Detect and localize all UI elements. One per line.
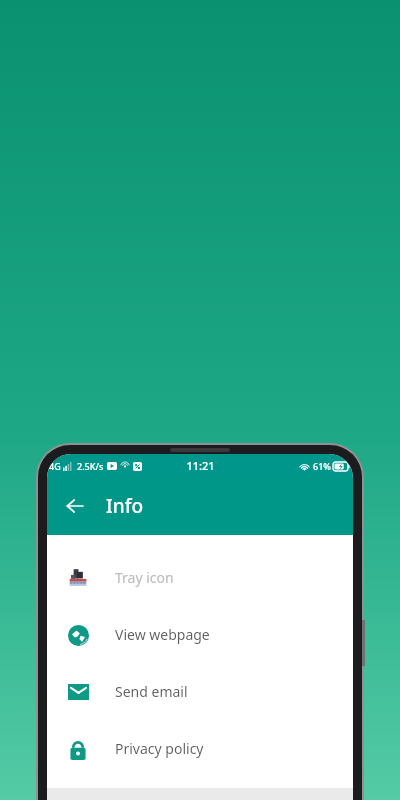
staticText: Send email bbox=[115, 682, 188, 701]
button[interactable]: View webpage bbox=[47, 606, 353, 663]
button[interactable]: Privacy policy bbox=[47, 720, 353, 777]
staticText: 2.5K/s bbox=[77, 460, 104, 472]
staticText: View webpage bbox=[115, 625, 210, 644]
staticText: Privacy policy bbox=[115, 739, 204, 758]
staticText: 4G bbox=[49, 460, 61, 472]
staticText: Info bbox=[106, 493, 144, 519]
button[interactable]: Back bbox=[55, 486, 95, 526]
staticText: 61% bbox=[313, 460, 331, 472]
staticText: Tray icon bbox=[115, 568, 174, 587]
staticText: 11:21 bbox=[186, 458, 215, 473]
button[interactable]: Tray icon bbox=[47, 549, 353, 606]
button[interactable]: Send email bbox=[47, 663, 353, 720]
